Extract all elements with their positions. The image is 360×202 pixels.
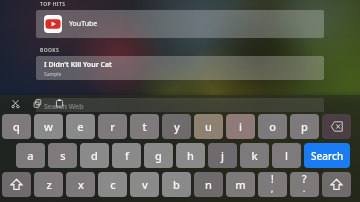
staticText: w [44,119,53,134]
staticText: h [187,148,194,163]
button[interactable]: v [130,172,159,197]
button[interactable]: s [48,143,77,168]
staticText: d [91,148,98,163]
staticText: o [269,119,276,134]
staticText: Search Web [44,102,84,112]
button[interactable]: t [130,114,159,139]
staticText: y [174,119,180,134]
button[interactable]: g [144,143,173,168]
button[interactable]: Shift [322,172,351,197]
button[interactable]: q [2,114,31,139]
button[interactable]: w [34,114,63,139]
staticText: . [303,183,306,194]
button[interactable]: Search Web [36,98,324,112]
button[interactable]: x [66,172,95,197]
staticText: ? [302,172,307,186]
button[interactable]: r [98,114,127,139]
staticText: Sample [44,71,62,78]
button[interactable]: ? [290,172,319,197]
staticText: YouTube [69,19,98,29]
button[interactable]: Copy [30,96,45,111]
button[interactable]: l [272,143,301,168]
staticText: x [78,177,84,192]
staticText: q [13,119,20,134]
button[interactable]: a [16,143,45,168]
button[interactable]: e [66,114,95,139]
staticText: t [142,119,147,134]
staticText: u [205,119,212,134]
staticText: e [77,119,84,134]
staticText: l [285,148,288,163]
staticText: , [271,183,274,194]
staticText: BOOKS [40,47,60,54]
button[interactable]: c [98,172,127,197]
staticText: j [221,148,224,163]
button[interactable]: Paste [52,96,67,111]
button[interactable]: f [112,143,141,168]
button[interactable]: u [194,114,223,139]
button[interactable]: o [258,114,287,139]
button[interactable]: d [80,143,109,168]
button[interactable]: i [226,114,255,139]
staticText: k [251,148,258,163]
staticText: z [46,177,52,192]
button[interactable]: YouTube [36,10,324,38]
staticText: I Didn't Kill Your Cat [44,60,112,70]
button[interactable]: ! [258,172,287,197]
button[interactable]: Shift [2,172,31,197]
button[interactable]: Cut [8,96,23,111]
staticText: TOP HITS [40,1,66,8]
button[interactable]: n [194,172,223,197]
staticText: r [110,119,115,134]
staticText: f [125,148,129,163]
button[interactable]: Backspace [322,114,351,139]
button[interactable]: j [208,143,237,168]
staticText: b [173,177,180,192]
staticText: s [60,148,66,163]
staticText: a [27,148,34,163]
staticText: n [205,177,212,192]
button[interactable]: z [34,172,63,197]
button[interactable]: Search [304,143,350,168]
button[interactable]: y [162,114,191,139]
button[interactable]: m [226,172,255,197]
staticText: p [301,119,308,134]
staticText: v [142,177,148,192]
staticText: ! [271,172,274,186]
button[interactable]: h [176,143,205,168]
button[interactable]: b [162,172,191,197]
staticText: Search [311,149,344,163]
button[interactable]: k [240,143,269,168]
button[interactable]: I Didn't Kill Your Cat [36,56,324,80]
staticText: g [155,148,162,163]
button[interactable]: p [290,114,319,139]
staticText: c [110,177,116,192]
staticText: i [239,119,242,134]
staticText: m [235,177,246,192]
